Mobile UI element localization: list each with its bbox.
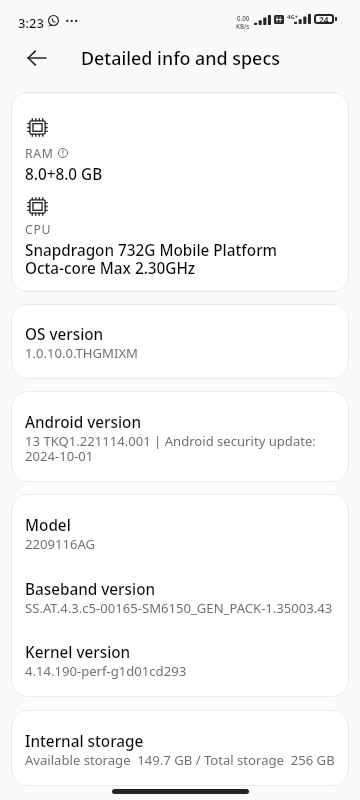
button[interactable]: Model	[11, 494, 349, 697]
staticText: Android version	[25, 412, 142, 433]
staticText: Model	[25, 515, 71, 536]
staticText: 13 TKQ1.221114.001 | Android security up…	[25, 432, 316, 465]
button[interactable]: RAM	[11, 92, 349, 292]
staticText: KB/s	[236, 22, 250, 30]
staticText: Baseband version	[25, 579, 156, 600]
staticText: 2209116AG	[25, 535, 96, 553]
staticText: Kernel version	[25, 642, 131, 663]
button[interactable]: Back	[16, 37, 58, 79]
staticText: CPU	[25, 221, 52, 238]
staticText: 24	[319, 14, 329, 24]
button[interactable]: OS version	[11, 304, 349, 379]
staticText: Snapdragon 732G Mobile Platform Octa-cor…	[25, 240, 278, 279]
staticText: Internal storage	[25, 731, 144, 752]
button[interactable]: Internal storage	[11, 710, 349, 786]
staticText: RAM	[25, 145, 54, 162]
staticText: 0.00	[237, 14, 250, 22]
staticText: 3:23	[18, 14, 44, 32]
staticText: 4G+	[287, 13, 299, 21]
staticText: 4.14.190-perf-g1d01cd293	[25, 662, 187, 680]
staticText: Detailed info and specs	[81, 46, 280, 70]
staticText: OS version	[25, 324, 104, 345]
staticText: 1.0.10.0.THGMIXM	[25, 344, 138, 362]
button[interactable]: Android version	[11, 391, 349, 482]
staticText: Available storage 149.7 GB / Total stora…	[25, 751, 335, 769]
staticText: 8.0+8.0 GB	[25, 164, 103, 185]
staticText: SS.AT.4.3.c5-00165-SM6150_GEN_PACK-1.350…	[25, 599, 333, 617]
